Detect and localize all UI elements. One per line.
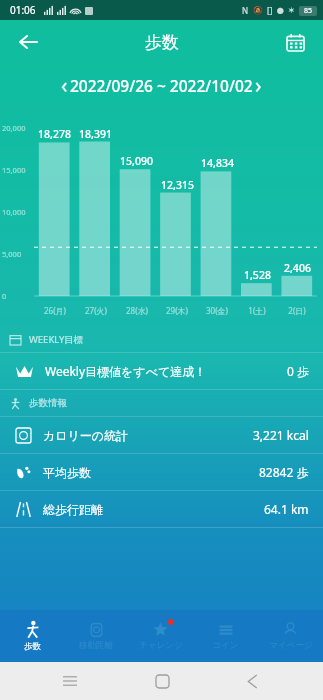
staticText: 5,000 xyxy=(2,249,22,259)
staticText: 85 xyxy=(304,6,313,16)
staticText: ‹ xyxy=(61,71,68,100)
staticText: 総歩行距離 xyxy=(43,502,103,517)
staticText: マイページ xyxy=(269,640,313,651)
staticText: 🔕 xyxy=(253,6,263,15)
staticText: WEEKLY目標 xyxy=(29,333,84,346)
staticText: 移動距離 xyxy=(79,640,113,651)
staticText: 27(火) xyxy=(85,305,107,316)
button[interactable]: カロリーの統計 xyxy=(0,417,323,453)
button[interactable]: Previous week xyxy=(59,71,70,100)
staticText: コイン xyxy=(212,640,239,651)
staticText: 3,221 kcal xyxy=(253,427,309,443)
staticText: 歩数情報 xyxy=(29,397,67,409)
button[interactable]: Recents xyxy=(48,662,92,700)
staticText: 01:06 xyxy=(10,3,36,17)
staticText: 2(日) xyxy=(288,305,306,316)
staticText: 18,391 xyxy=(79,127,112,141)
button[interactable]: Calendar xyxy=(275,22,315,62)
staticText: 1,528 xyxy=(244,268,271,282)
staticText: 14,834 xyxy=(201,156,234,170)
staticText: 12,315 xyxy=(161,178,194,192)
button[interactable]: 移動距離 xyxy=(64,610,128,662)
button[interactable]: コイン xyxy=(193,610,258,662)
staticText: 2022/09/26 ~ 2022/10/02 xyxy=(70,75,253,96)
staticText: 歩数 xyxy=(145,32,179,53)
button[interactable]: 総歩行距離 xyxy=(0,491,323,527)
button[interactable]: Weekly目標値をすべて達成！ xyxy=(0,353,323,389)
staticText: N xyxy=(242,5,249,16)
staticText: 10,000 xyxy=(2,207,26,217)
staticText: 29(木) xyxy=(166,305,188,316)
button[interactable]: チャレンジ xyxy=(128,610,193,662)
staticText: 0 xyxy=(2,291,7,301)
staticText: ✶ xyxy=(288,6,295,15)
staticText: 30(金) xyxy=(206,305,228,316)
staticText: 20,000 xyxy=(2,123,26,133)
button[interactable]: 歩数 xyxy=(0,610,64,662)
staticText: カロリーの統計 xyxy=(43,428,129,443)
button[interactable]: Next week xyxy=(253,71,264,100)
staticText: ● xyxy=(277,6,284,15)
button[interactable]: Back xyxy=(231,662,275,700)
staticText: 82842 歩 xyxy=(259,464,309,480)
button[interactable]: Home xyxy=(140,662,184,700)
button[interactable]: Back xyxy=(8,22,48,62)
button[interactable]: 平均歩数 xyxy=(0,454,323,490)
staticText: チャレンジ xyxy=(139,640,183,651)
staticText: 26(月) xyxy=(44,305,66,316)
staticText: 15,090 xyxy=(120,154,153,168)
staticText: 歩数 xyxy=(24,641,41,652)
staticText: 28(水) xyxy=(126,305,148,316)
staticText: 1(土) xyxy=(248,305,266,316)
staticText: 18,278 xyxy=(38,127,71,141)
staticText: 0 歩 xyxy=(287,363,309,379)
button[interactable]: マイページ xyxy=(258,610,323,662)
staticText: › xyxy=(255,71,262,100)
staticText: 2,406 xyxy=(284,261,311,275)
staticText: Weekly目標値をすべて達成！ xyxy=(45,363,207,379)
staticText: 平均歩数 xyxy=(43,465,91,480)
staticText: [] xyxy=(267,5,273,16)
staticText: 64.1 km xyxy=(264,501,309,517)
staticText: 15,000 xyxy=(2,165,26,175)
